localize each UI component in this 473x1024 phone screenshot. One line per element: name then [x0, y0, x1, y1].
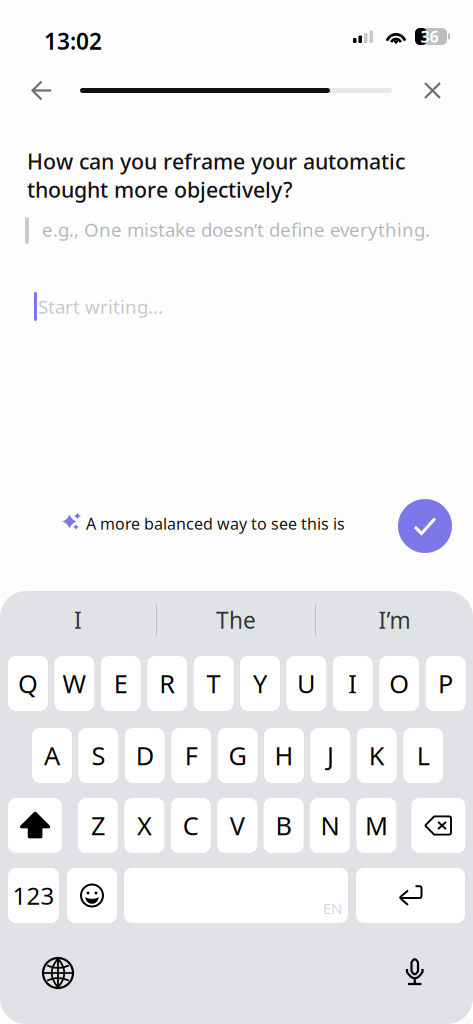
- button[interactable]: L: [403, 728, 443, 783]
- staticText: Start writing...: [38, 294, 163, 319]
- staticText: I: [348, 667, 357, 700]
- button[interactable]: Z: [78, 798, 118, 853]
- button[interactable]: U: [286, 656, 326, 711]
- staticText: K: [369, 739, 385, 772]
- staticText: e.g., One mistake doesn’t define everyth…: [42, 217, 430, 242]
- staticText: Z: [91, 809, 105, 842]
- staticText: D: [136, 739, 154, 772]
- button[interactable]: J: [310, 728, 350, 783]
- button[interactable]: P: [426, 656, 466, 711]
- staticText: J: [327, 739, 334, 772]
- staticText: 13:02: [44, 26, 102, 56]
- staticText: A more balanced way to see this is: [86, 513, 345, 534]
- staticText: EN: [323, 898, 342, 918]
- staticText: L: [417, 739, 430, 772]
- button[interactable]: I: [0, 600, 156, 640]
- staticText: V: [230, 809, 245, 842]
- button[interactable]: T: [194, 656, 234, 711]
- staticText: B: [276, 809, 292, 842]
- button[interactable]: N: [310, 798, 350, 853]
- button[interactable]: X: [124, 798, 164, 853]
- button[interactable]: D: [125, 728, 165, 783]
- button[interactable]: I: [333, 656, 373, 711]
- staticText: Y: [253, 667, 267, 700]
- button[interactable]: M: [356, 798, 396, 853]
- button[interactable]: Y: [240, 656, 280, 711]
- staticText: A: [44, 739, 60, 772]
- button[interactable]: C: [171, 798, 211, 853]
- button[interactable]: Dictate: [404, 955, 426, 988]
- staticText: How can you reframe your automatic thoug…: [27, 147, 405, 204]
- button[interactable]: Close: [424, 82, 441, 99]
- button[interactable]: B: [264, 798, 304, 853]
- button[interactable]: 123: [8, 868, 59, 923]
- staticText: O: [389, 667, 409, 700]
- button[interactable]: [356, 868, 465, 923]
- staticText: G: [229, 739, 247, 772]
- staticText: W: [62, 667, 86, 700]
- button[interactable]: O: [379, 656, 419, 711]
- button[interactable]: [67, 868, 117, 923]
- button[interactable]: Next keyboard: [42, 957, 74, 989]
- staticText: F: [185, 739, 198, 772]
- button[interactable]: S: [78, 728, 118, 783]
- staticText: I’m: [378, 605, 410, 635]
- staticText: N: [320, 809, 339, 842]
- staticText: C: [183, 809, 199, 842]
- staticText: R: [159, 667, 175, 700]
- button[interactable]: G: [218, 728, 258, 783]
- staticText: E: [114, 667, 128, 700]
- button[interactable]: EN: [124, 868, 348, 923]
- button[interactable]: H: [264, 728, 304, 783]
- button[interactable]: [8, 798, 62, 853]
- staticText: I: [74, 605, 82, 635]
- staticText: M: [365, 809, 388, 842]
- staticText: 123: [12, 880, 54, 911]
- button[interactable]: W: [54, 656, 94, 711]
- button[interactable]: Back: [32, 81, 52, 100]
- staticText: U: [297, 667, 316, 700]
- button[interactable]: V: [217, 798, 257, 853]
- button[interactable]: F: [171, 728, 211, 783]
- button[interactable]: R: [147, 656, 187, 711]
- button[interactable]: K: [357, 728, 397, 783]
- staticText: T: [207, 667, 221, 700]
- staticText: The: [216, 605, 256, 635]
- button[interactable]: E: [101, 656, 141, 711]
- button[interactable]: Q: [8, 656, 48, 711]
- button[interactable]: Submit: [398, 499, 452, 553]
- staticText: P: [438, 667, 453, 700]
- staticText: Q: [18, 667, 38, 700]
- staticText: 36: [420, 26, 438, 47]
- staticText: X: [137, 809, 152, 842]
- staticText: H: [274, 739, 293, 772]
- button[interactable]: [411, 798, 465, 853]
- staticText: S: [91, 739, 105, 772]
- button[interactable]: The: [157, 600, 315, 640]
- button[interactable]: I’m: [316, 600, 473, 640]
- button[interactable]: A: [32, 728, 72, 783]
